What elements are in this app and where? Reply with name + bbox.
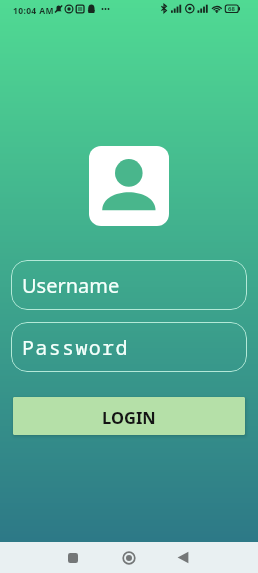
- button[interactable]: Home: [111, 542, 147, 573]
- button[interactable]: Password: [11, 322, 247, 372]
- button[interactable]: Back: [165, 542, 201, 573]
- staticText: 68: [228, 5, 235, 13]
- staticText: Username: [22, 272, 120, 299]
- staticText: LOGIN: [102, 406, 156, 428]
- button[interactable]: Username: [11, 260, 247, 310]
- button[interactable]: Recent apps: [55, 542, 90, 573]
- button[interactable]: LOGIN: [13, 397, 245, 435]
- staticText: 10:04 AM: [13, 5, 54, 17]
- staticText: Password: [22, 334, 129, 361]
